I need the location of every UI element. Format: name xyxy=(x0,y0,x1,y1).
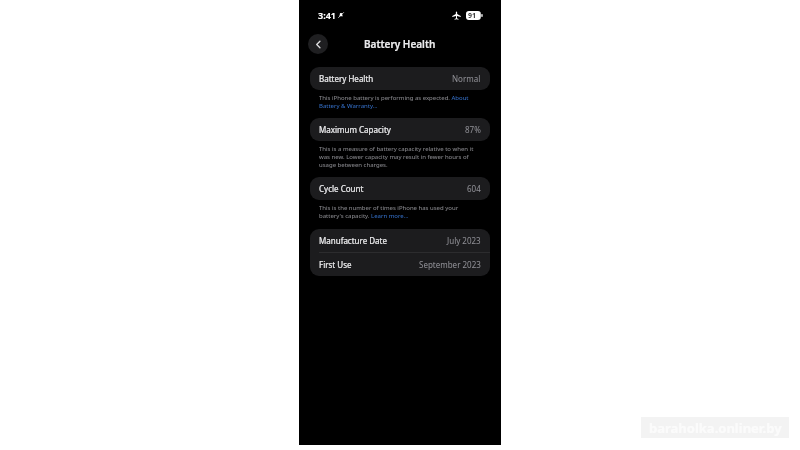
button[interactable]: Manufacture Date xyxy=(310,229,490,252)
staticText: September 2023 xyxy=(419,259,481,270)
button[interactable]: Maximum Capacity xyxy=(310,118,490,141)
staticText: Battery Health xyxy=(364,37,436,51)
button[interactable]: Cycle Count xyxy=(310,177,490,200)
staticText: Battery Health xyxy=(319,73,374,84)
button[interactable]: Battery Health xyxy=(310,67,490,90)
staticText: 3:41 xyxy=(318,9,336,21)
staticText: First Use xyxy=(319,259,352,270)
staticText: 91 xyxy=(468,11,477,20)
staticText: This is the number of times iPhone has u… xyxy=(319,204,483,220)
staticText: Cycle Count xyxy=(319,183,364,194)
staticText: baraholka.onliner.by xyxy=(649,419,782,437)
staticText: Normal xyxy=(452,73,481,84)
staticText: Maximum Capacity xyxy=(319,124,391,135)
staticText: This is a measure of battery capacity re… xyxy=(319,145,483,169)
button[interactable]: Back xyxy=(308,34,328,54)
staticText: 87% xyxy=(465,124,481,135)
staticText: This iPhone battery is performing as exp… xyxy=(319,94,483,110)
staticText: Manufacture Date xyxy=(319,235,388,246)
staticText: 604 xyxy=(467,183,481,194)
button[interactable]: First Use xyxy=(310,253,490,276)
staticText: July 2023 xyxy=(447,235,481,246)
